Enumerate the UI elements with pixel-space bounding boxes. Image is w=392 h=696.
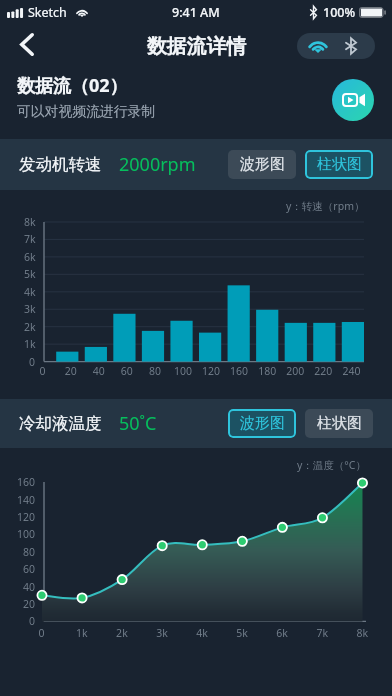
button[interactable]: Back — [4, 22, 50, 66]
button[interactable]: 波形图 — [228, 150, 296, 179]
staticText: 9:41 AM — [172, 4, 220, 21]
button[interactable]: 柱状图 — [305, 150, 373, 179]
button[interactable]: Connectivity status — [297, 33, 375, 59]
staticText: 数据流详情 — [147, 34, 246, 59]
staticText: 100% — [323, 4, 356, 21]
staticText: 数据流（02） — [17, 73, 128, 98]
button[interactable]: 柱状图 — [305, 409, 373, 438]
button[interactable]: 波形图 — [228, 409, 296, 438]
staticText: 波形图 — [240, 155, 285, 174]
staticText: 柱状图 — [317, 414, 362, 433]
staticText: 冷却液温度 — [19, 413, 102, 434]
staticText: 2000rpm — [119, 152, 196, 177]
staticText: 柱状图 — [317, 155, 362, 174]
staticText: 发动机转速 — [19, 154, 102, 175]
staticText: 波形图 — [240, 414, 285, 433]
staticText: 可以对视频流进行录制 — [17, 103, 155, 120]
staticText: 50˚C — [119, 411, 157, 436]
button[interactable]: Record video — [332, 79, 374, 121]
staticText: Sketch — [28, 4, 67, 21]
